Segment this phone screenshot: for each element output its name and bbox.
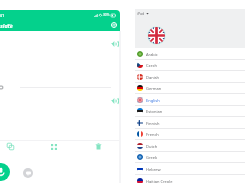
- staticText: French: [146, 132, 159, 137]
- button[interactable]: Finnish: [135, 117, 245, 129]
- button[interactable]: English: [135, 94, 245, 106]
- staticText: 30%: [103, 13, 110, 17]
- staticText: PRO: [7, 22, 12, 25]
- staticText: Hebrew: [146, 167, 161, 172]
- staticText: 9:41: [0, 13, 5, 17]
- staticText: Arabic: [146, 52, 158, 57]
- button[interactable]: English flag: [147, 26, 166, 45]
- staticText: Dutch: [146, 144, 158, 149]
- staticText: Greek: [146, 155, 158, 160]
- button[interactable]: Listen: [111, 97, 119, 105]
- button[interactable]: Dutch: [135, 140, 245, 152]
- button[interactable]: Listen: [111, 40, 119, 48]
- staticText: Czech: [146, 63, 158, 68]
- button[interactable]: Power: [111, 22, 117, 28]
- button[interactable]: French: [135, 128, 245, 140]
- staticText: English: [146, 98, 160, 103]
- staticText: Estonian: [146, 109, 163, 114]
- button[interactable]: Speak: [0, 163, 10, 181]
- button[interactable]: German: [135, 82, 245, 94]
- button[interactable]: Conversation: [23, 168, 33, 178]
- button[interactable]: Czech: [135, 59, 245, 71]
- button[interactable]: Estonian: [135, 105, 245, 117]
- button[interactable]: Hebrew: [135, 163, 245, 175]
- staticText: Haitian Creole: [146, 179, 173, 183]
- button[interactable]: Haitian Creole: [135, 175, 245, 183]
- staticText: iPad: [137, 11, 145, 16]
- button[interactable]: Danish: [135, 71, 245, 83]
- staticText: Danish: [146, 75, 160, 80]
- button[interactable]: Full screen: [32, 141, 76, 152]
- staticText: German: [146, 86, 162, 91]
- button[interactable]: Greek: [135, 151, 245, 163]
- button[interactable]: Arabic: [135, 48, 245, 60]
- staticText: Translate: [0, 22, 13, 29]
- button[interactable]: Copy: [0, 141, 32, 152]
- staticText: Finnish: [146, 121, 160, 126]
- button[interactable]: Delete: [76, 141, 120, 152]
